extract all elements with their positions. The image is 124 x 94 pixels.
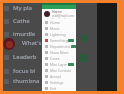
button[interactable]: Accept Management (42, 73, 76, 79)
staticText: thumbna (13, 77, 40, 85)
staticText: Home (50, 20, 60, 25)
button[interactable]: Action (68, 39, 74, 42)
staticText: Music (50, 26, 60, 31)
button[interactable]: Home (42, 19, 76, 25)
button[interactable]: thumbna (4, 77, 40, 85)
staticText: My pla (13, 4, 33, 12)
staticText: Show More (50, 50, 69, 55)
staticText: Settings (50, 80, 64, 85)
staticText: Something (50, 38, 68, 43)
staticText: Lightning (50, 32, 66, 37)
staticText: mail@mail.com (52, 14, 74, 18)
staticText: Department (50, 44, 71, 49)
staticText: Leaderb (13, 53, 37, 61)
staticText: Name (52, 9, 62, 14)
button[interactable]: Show More (42, 49, 76, 55)
button[interactable]: Mini Console (42, 67, 76, 73)
staticText: What's (22, 39, 42, 47)
staticText: Exit (50, 86, 56, 91)
button[interactable]: Action (68, 63, 74, 66)
staticText: imurdle (13, 30, 36, 38)
button[interactable]: Cathe (4, 17, 40, 25)
button[interactable]: Department (42, 43, 76, 49)
button[interactable]: Mini Layer (42, 61, 76, 67)
button[interactable]: Name (42, 9, 76, 19)
button[interactable]: My pla (4, 4, 40, 12)
staticText: Accept Management (50, 74, 76, 79)
staticText: Mini Layer (50, 62, 68, 67)
button[interactable]: focus bl (4, 67, 40, 75)
button[interactable]: Leaderb (4, 53, 40, 61)
button[interactable]: App icon (3, 38, 15, 50)
button[interactable]: imurdle (4, 30, 40, 38)
button[interactable]: Action (71, 45, 76, 48)
button[interactable]: Music (42, 25, 76, 31)
button[interactable]: Something (42, 37, 76, 43)
staticText: Mini Console (50, 68, 72, 73)
staticText: focus bl (13, 67, 36, 75)
button[interactable]: Lightning (42, 31, 76, 37)
staticText: Cathe (13, 17, 30, 25)
button[interactable]: Exit (42, 85, 76, 91)
staticText: Cases (50, 56, 60, 61)
button[interactable]: Cases (42, 55, 76, 61)
staticText: Tap to edit (52, 18, 67, 19)
button[interactable]: Settings (42, 79, 76, 85)
